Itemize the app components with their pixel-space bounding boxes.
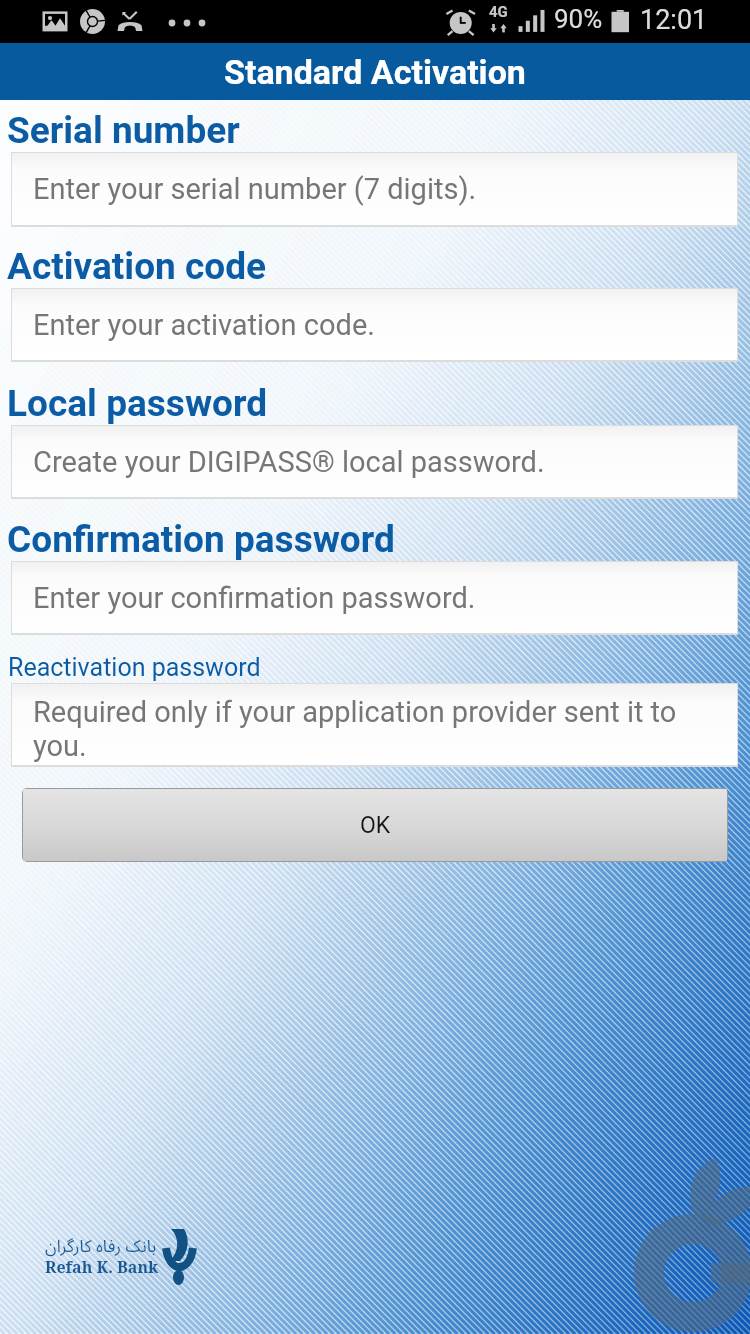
button[interactable]: Enter your serial number (7 digits). — [12, 153, 737, 225]
staticText: Reactivation password — [8, 653, 261, 682]
staticText: Serial number — [7, 109, 240, 152]
button[interactable]: Enter your confirmation password. — [12, 562, 737, 633]
staticText: Enter your activation code. — [33, 308, 375, 342]
staticText: Activation code — [7, 245, 267, 288]
staticText: بانک رفاه کارگران — [45, 1229, 157, 1265]
staticText: Enter your confirmation password. — [33, 581, 476, 615]
staticText: Refah K. Bank — [45, 1256, 159, 1278]
staticText: Confirmation password — [7, 518, 395, 561]
staticText: Create your DIGIPASS® local password. — [33, 445, 545, 479]
staticText: Enter your serial number (7 digits). — [33, 172, 477, 206]
button[interactable]: OK — [23, 789, 727, 861]
staticText: OK — [360, 812, 391, 839]
button[interactable]: Enter your activation code. — [12, 289, 737, 360]
staticText: Required only if your application provid… — [33, 695, 677, 763]
staticText: Standard Activation — [224, 52, 526, 92]
staticText: 4G — [489, 3, 508, 21]
staticText: 90% — [554, 4, 603, 34]
button[interactable]: Create your DIGIPASS® local password. — [12, 426, 737, 497]
staticText: Local password — [7, 382, 268, 425]
staticText: 12:01 — [640, 4, 708, 36]
button[interactable]: Required only if your application provid… — [12, 684, 737, 765]
